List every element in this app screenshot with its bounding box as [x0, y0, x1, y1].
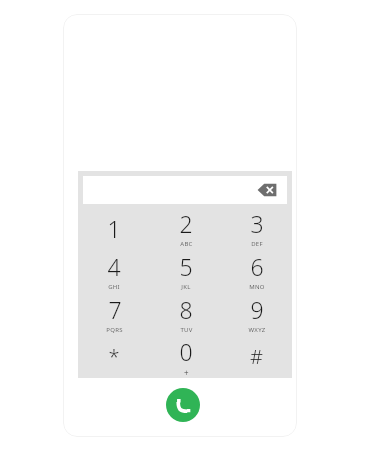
button[interactable]: 9	[221, 292, 292, 335]
staticText: WXYZ	[248, 326, 266, 334]
staticText: MNO	[249, 283, 265, 291]
button[interactable]: Call	[166, 388, 200, 422]
staticText: 7	[108, 294, 122, 325]
button[interactable]: 2	[150, 207, 221, 249]
staticText: 6	[250, 251, 264, 282]
staticText: 2	[179, 208, 193, 239]
staticText: DEF	[251, 240, 263, 248]
staticText: JKL	[181, 283, 191, 291]
staticText: 5	[179, 251, 193, 282]
staticText: #	[250, 343, 263, 370]
staticText: 3	[250, 208, 264, 239]
staticText: *	[108, 343, 120, 370]
staticText: ABC	[180, 240, 193, 248]
button[interactable]: 5	[150, 249, 221, 292]
button[interactable]: 3	[221, 207, 292, 249]
button[interactable]: 6	[221, 249, 292, 292]
staticText: 0	[179, 336, 193, 367]
staticText: +	[184, 367, 189, 378]
button[interactable]: 1	[78, 207, 150, 249]
button[interactable]: *	[78, 335, 150, 378]
staticText: 9	[250, 294, 264, 325]
button[interactable]: 7	[78, 292, 150, 335]
button[interactable]: #	[221, 335, 292, 378]
button[interactable]: 4	[78, 249, 150, 292]
staticText: PQRS	[106, 326, 123, 334]
staticText: 4	[107, 251, 121, 282]
button[interactable]: 8	[150, 292, 221, 335]
button[interactable]: Backspace	[83, 176, 287, 204]
staticText: GHI	[108, 283, 120, 291]
staticText: 1	[107, 213, 121, 244]
button[interactable]: Backspace	[255, 178, 279, 202]
button[interactable]: 0	[150, 335, 221, 378]
staticText: TUV	[180, 326, 193, 334]
staticText: 8	[179, 294, 193, 325]
